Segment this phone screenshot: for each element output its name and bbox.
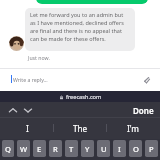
staticText: P [149, 144, 154, 154]
button[interactable]: Y [81, 140, 94, 157]
button[interactable]: Write a reply... [0, 69, 160, 91]
button[interactable]: T [65, 140, 78, 157]
button[interactable]: I'm [107, 118, 160, 139]
button[interactable]: Previous field [7, 105, 19, 117]
staticText: Let me forward you to an admin but as I … [30, 11, 126, 43]
staticText: W [20, 144, 28, 154]
staticText: I [26, 123, 29, 134]
button[interactable]: Next field [22, 105, 34, 117]
button[interactable]: E [33, 140, 46, 157]
staticText: T [69, 144, 74, 154]
staticText: O [133, 144, 139, 154]
button[interactable]: I [113, 140, 126, 157]
staticText: Write a reply... [13, 76, 48, 83]
button[interactable]: W [17, 140, 30, 157]
staticText: E [37, 144, 42, 154]
button[interactable]: freecash.com [0, 91, 160, 102]
staticText: Just now. [28, 54, 50, 61]
staticText: I'm [127, 123, 140, 134]
button[interactable]: Done [129, 102, 160, 118]
button[interactable]: The [54, 118, 107, 139]
button[interactable]: O [129, 140, 142, 157]
button[interactable]: R [49, 140, 62, 157]
staticText: I [118, 144, 121, 154]
button[interactable]: Q [2, 140, 14, 157]
staticText: freecash.com [66, 93, 102, 101]
staticText: The [73, 123, 88, 134]
staticText: U [101, 144, 107, 154]
staticText: Done [133, 105, 154, 116]
button[interactable]: I [0, 118, 54, 139]
button[interactable]: Let me forward you to an admin but as I … [25, 8, 135, 51]
staticText: Q [5, 144, 11, 154]
button[interactable]: U [97, 140, 110, 157]
staticText: R [53, 144, 58, 154]
button[interactable]: Attach file [141, 74, 152, 85]
button[interactable]: P [145, 140, 158, 157]
button[interactable] [36, 0, 148, 4]
staticText: Y [85, 144, 90, 154]
